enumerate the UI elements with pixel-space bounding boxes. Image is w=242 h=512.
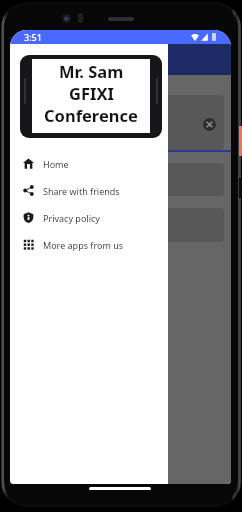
button[interactable]: Privacy policy — [10, 204, 168, 231]
staticText: GFIXI — [69, 82, 114, 104]
staticText: Privacy policy — [43, 212, 100, 224]
staticText: Home — [43, 158, 69, 170]
staticText: Conference — [44, 104, 138, 126]
staticText: 3:51 — [24, 31, 42, 43]
button[interactable]: More apps from us — [10, 231, 168, 258]
button[interactable]: Home — [10, 150, 168, 177]
staticText: Mr. Sam — [59, 60, 124, 82]
button[interactable]: Close — [203, 118, 216, 131]
button[interactable]: Share with friends — [10, 177, 168, 204]
staticText: Share with friends — [43, 185, 120, 197]
staticText: More apps from us — [43, 239, 124, 251]
